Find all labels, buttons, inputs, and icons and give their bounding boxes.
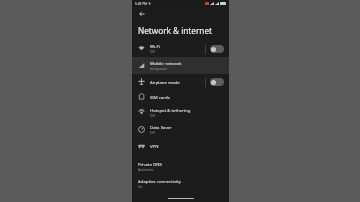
- staticText: Adaptive connectivity: [138, 178, 181, 184]
- staticText: Wi-Fi: [150, 43, 160, 49]
- button[interactable]: Wi-Fi: [132, 40, 229, 57]
- staticText: Off: [150, 50, 155, 54]
- button[interactable]: Mobile network: [132, 57, 229, 74]
- button[interactable]: Toggle: [210, 78, 224, 86]
- button[interactable]: Toggle: [210, 45, 224, 53]
- button[interactable]: Private DNS: [132, 158, 229, 175]
- staticText: VPN: [150, 143, 159, 149]
- staticText: Off: [150, 131, 155, 135]
- staticText: Network & internet: [138, 25, 212, 36]
- button[interactable]: Hotspot & tethering: [132, 104, 229, 121]
- staticText: SIM cards: [150, 94, 170, 100]
- staticText: 5:28 PM: [135, 2, 147, 6]
- staticText: Off: [150, 114, 155, 118]
- staticText: On: [138, 185, 143, 189]
- staticText: Automatic: [138, 168, 154, 172]
- button[interactable]: Adaptive connectivity: [132, 175, 229, 192]
- staticText: Mobile network: [150, 60, 182, 66]
- button[interactable]: Data Saver: [132, 121, 229, 138]
- staticText: bangsaone: [150, 67, 167, 71]
- button[interactable]: Back: [137, 9, 147, 19]
- staticText: Airplane mode: [150, 79, 180, 85]
- staticText: Private DNS: [138, 161, 162, 167]
- button[interactable]: Airplane mode: [132, 74, 229, 89]
- staticText: Data Saver: [150, 124, 172, 130]
- button[interactable]: SIM cards: [132, 89, 229, 104]
- button[interactable]: VPN: [132, 138, 229, 153]
- staticText: Hotspot & tethering: [150, 107, 191, 113]
